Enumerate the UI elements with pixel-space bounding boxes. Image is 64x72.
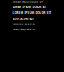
staticText: LOREM IPSUM DOLOR SIT: [12, 0, 42, 3]
staticText: ADIPISCING ELIT: [12, 17, 34, 20]
staticText: LOREM IPSUM DOLOR SIT: [12, 11, 51, 15]
staticText: consectetur adipiscing: [12, 22, 34, 25]
staticText: LOREM IPSUM DOLOR SIT: [12, 5, 46, 9]
staticText: Lorem ipsum dolor sit: [12, 27, 35, 31]
